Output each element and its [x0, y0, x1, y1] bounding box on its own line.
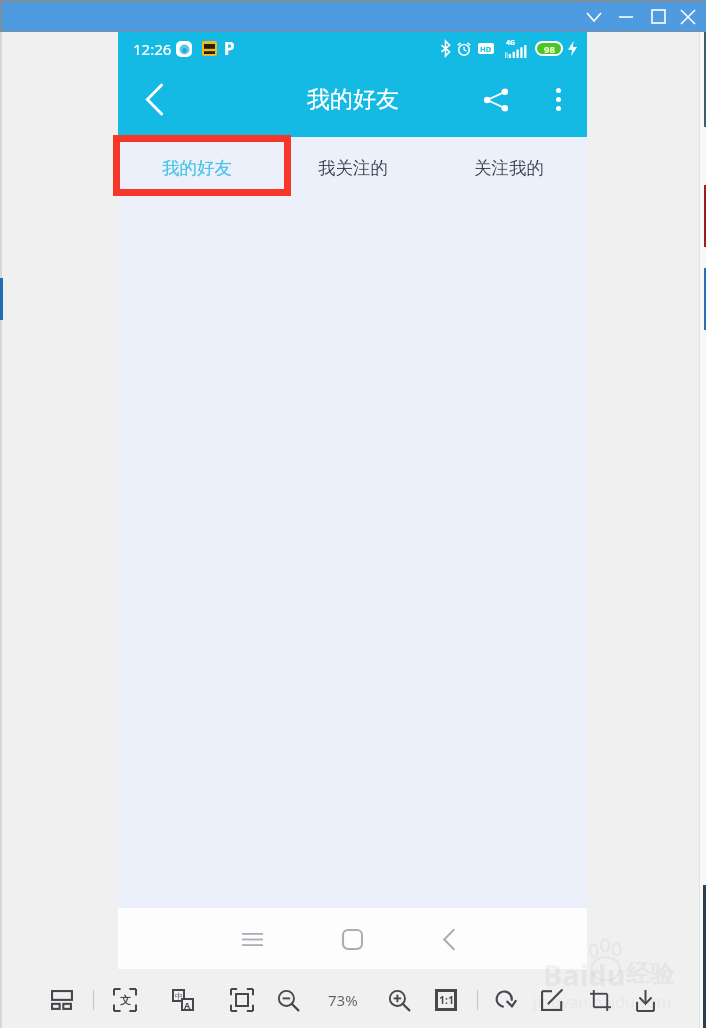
button[interactable]: Home — [328, 915, 376, 963]
button[interactable]: Minimize — [610, 2, 642, 31]
button[interactable]: Recents — [228, 915, 276, 963]
button[interactable]: Zoom out — [271, 983, 305, 1017]
button[interactable]: Crop — [583, 983, 617, 1017]
staticText: jingyan.baidu.com — [533, 991, 672, 1013]
staticText: 我的好友 — [307, 85, 399, 114]
button[interactable]: Back — [425, 915, 473, 963]
staticText: A — [184, 999, 191, 1011]
button[interactable]: More options — [534, 75, 582, 123]
staticText: 中 — [175, 991, 183, 1001]
staticText: 1:1 — [439, 993, 454, 1007]
staticText: 98 — [544, 43, 555, 54]
button[interactable]: Close — [672, 2, 704, 31]
staticText: 我关注的 — [318, 157, 388, 179]
button[interactable]: Download — [628, 983, 662, 1017]
staticText: P — [224, 37, 235, 60]
staticText: 4G — [506, 38, 516, 48]
staticText: 文 — [120, 993, 131, 1007]
staticText: 经验 — [626, 959, 674, 989]
staticText: 12:26 — [133, 39, 172, 59]
staticText: 73% — [328, 990, 358, 1010]
button[interactable]: Collapse — [578, 2, 610, 31]
button[interactable]: Rotate — [489, 983, 523, 1017]
button[interactable]: Layout — [45, 983, 79, 1017]
button[interactable]: 关注我的 — [431, 137, 587, 199]
button[interactable]: Text recognition — [108, 983, 142, 1017]
staticText: 我的好友 — [162, 157, 232, 179]
button[interactable]: 我关注的 — [275, 137, 431, 199]
button[interactable]: Maximize — [642, 2, 674, 31]
button[interactable]: Back — [130, 75, 179, 124]
button[interactable]: 我的好友 — [118, 137, 275, 199]
button[interactable]: Fit to window — [225, 983, 259, 1017]
staticText: Baidu — [543, 955, 626, 994]
button[interactable]: Edit — [535, 983, 569, 1017]
button[interactable]: Share — [471, 75, 521, 125]
staticText: HD — [480, 44, 492, 54]
staticText: 关注我的 — [474, 157, 544, 179]
button[interactable]: Actual size — [429, 983, 463, 1017]
button[interactable]: Translate — [166, 983, 200, 1017]
button[interactable]: Zoom in — [382, 983, 416, 1017]
